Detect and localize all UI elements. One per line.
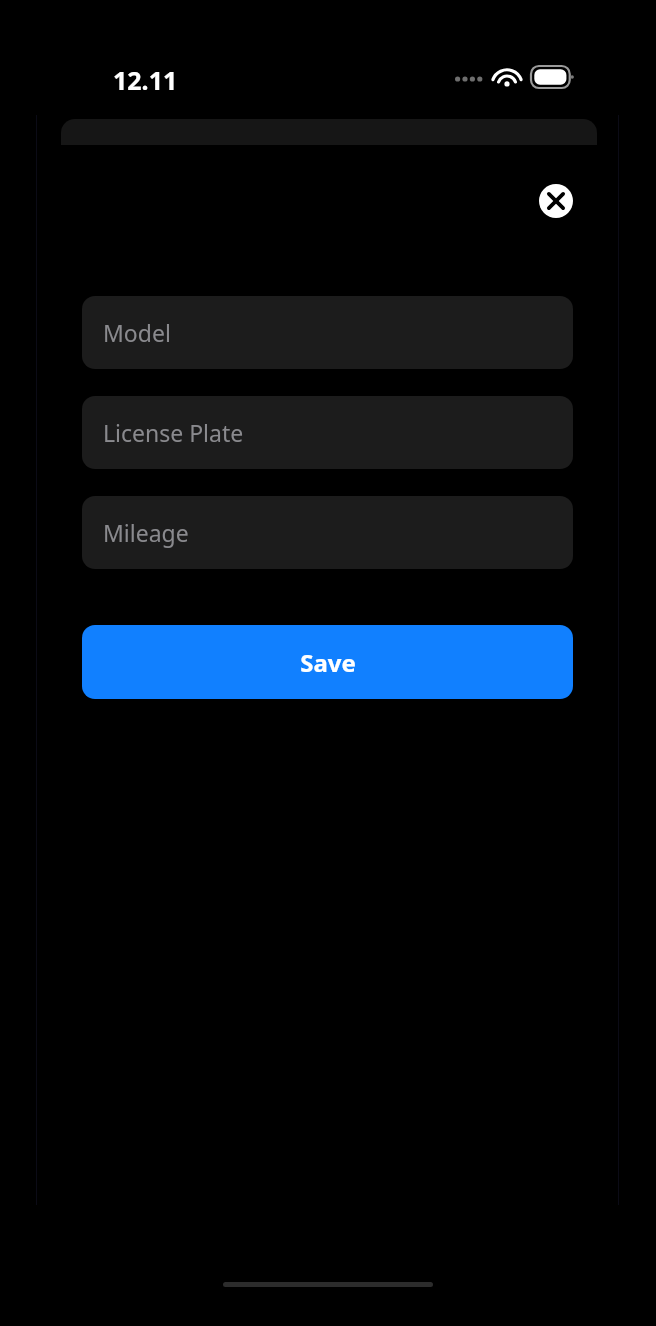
button[interactable]: Close (533, 178, 578, 223)
staticText: Save (300, 646, 356, 679)
button[interactable]: License Plate (82, 396, 573, 469)
staticText: Mileage (103, 517, 189, 548)
button[interactable]: Mileage (82, 496, 573, 569)
button[interactable]: Model (82, 296, 573, 369)
button[interactable]: Save (82, 625, 573, 699)
staticText: 12.11 (113, 63, 178, 97)
staticText: Model (103, 317, 171, 348)
staticText: License Plate (103, 417, 244, 448)
